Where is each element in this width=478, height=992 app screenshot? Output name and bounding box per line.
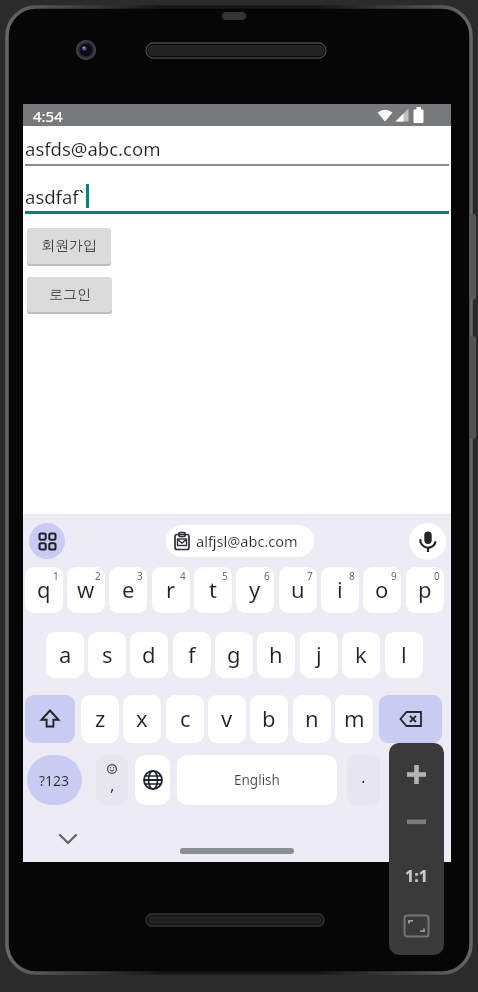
button[interactable]: k — [342, 632, 380, 678]
button[interactable]: m — [335, 695, 373, 743]
button[interactable]: n — [293, 695, 331, 743]
button[interactable] — [379, 695, 442, 743]
button[interactable]: ?123 — [27, 755, 82, 805]
staticText: 6 — [264, 569, 270, 583]
button[interactable] — [135, 755, 170, 805]
button[interactable]: c — [166, 695, 204, 743]
staticText: j — [316, 639, 322, 669]
staticText: asfds@abc.com — [25, 136, 161, 161]
button[interactable]: h — [257, 632, 295, 678]
staticText: n — [305, 703, 319, 733]
button[interactable]: , — [96, 755, 128, 805]
button[interactable]: . — [347, 755, 380, 805]
button[interactable]: j — [300, 632, 338, 678]
button[interactable]: i — [321, 567, 359, 613]
button[interactable] — [407, 765, 426, 784]
button[interactable]: z — [81, 695, 119, 743]
staticText: alfjsl@abc.com — [196, 531, 298, 551]
staticText: b — [262, 703, 276, 733]
button[interactable]: 회원가입 — [27, 228, 111, 264]
staticText: c — [180, 703, 191, 733]
button[interactable]: alfjsl@abc.com — [166, 525, 314, 557]
staticText: s — [102, 639, 113, 669]
button[interactable]: d — [130, 632, 168, 678]
button[interactable] — [29, 523, 65, 559]
staticText: k — [355, 639, 367, 669]
staticText: v — [221, 703, 233, 733]
staticText: d — [142, 639, 156, 669]
staticText: 3 — [137, 569, 143, 583]
staticText: 회원가입 — [41, 237, 97, 255]
staticText: z — [95, 703, 106, 733]
staticText: l — [401, 639, 407, 669]
staticText: r — [166, 574, 176, 604]
staticText: u — [291, 574, 305, 604]
staticText: . — [361, 765, 366, 788]
button[interactable]: 로그인 — [27, 277, 112, 312]
staticText: 4 — [180, 569, 186, 583]
button[interactable]: s — [88, 632, 126, 678]
staticText: w — [77, 574, 95, 604]
button[interactable] — [407, 819, 426, 825]
button[interactable]: o — [363, 567, 401, 613]
staticText: ?123 — [39, 771, 70, 790]
staticText: y — [249, 574, 261, 604]
staticText: g — [227, 639, 241, 669]
button[interactable]: t — [194, 567, 232, 613]
staticText: h — [269, 639, 283, 669]
button[interactable]: p — [406, 567, 444, 613]
staticText: e — [122, 574, 135, 604]
staticText: , — [110, 773, 115, 796]
staticText: t — [209, 574, 217, 604]
button[interactable] — [409, 523, 446, 560]
button[interactable]: 1:1 — [389, 865, 444, 887]
staticText: 8 — [349, 569, 355, 583]
button[interactable]: g — [215, 632, 253, 678]
staticText: 2 — [95, 569, 101, 583]
staticText: 로그인 — [49, 286, 91, 304]
button[interactable]: e — [109, 567, 147, 613]
staticText: asdfaf` — [25, 184, 84, 209]
button[interactable]: y — [236, 567, 274, 613]
button[interactable]: q — [25, 567, 63, 613]
staticText: i — [337, 574, 343, 604]
button[interactable] — [58, 832, 78, 846]
button[interactable]: x — [123, 695, 161, 743]
button[interactable]: w — [67, 567, 105, 613]
staticText: x — [136, 703, 148, 733]
staticText: f — [188, 639, 196, 669]
button[interactable]: r — [152, 567, 190, 613]
button[interactable]: l — [385, 632, 423, 678]
button[interactable]: v — [208, 695, 246, 743]
staticText: 5 — [222, 569, 228, 583]
staticText: 1:1 — [405, 865, 428, 887]
staticText: 1 — [53, 569, 59, 583]
button[interactable]: f — [173, 632, 211, 678]
button[interactable]: b — [250, 695, 288, 743]
button[interactable] — [25, 695, 75, 743]
staticText: 0 — [434, 569, 440, 583]
button[interactable]: English — [177, 755, 337, 805]
button[interactable] — [404, 915, 429, 937]
staticText: 4:54 — [33, 106, 63, 126]
staticText: q — [37, 574, 51, 604]
staticText: 7 — [307, 569, 313, 583]
staticText: English — [234, 771, 280, 789]
staticText: o — [375, 574, 389, 604]
button[interactable]: u — [279, 567, 317, 613]
button[interactable]: a — [46, 632, 84, 678]
staticText: m — [344, 703, 365, 733]
staticText: p — [418, 574, 432, 604]
staticText: 9 — [391, 569, 397, 583]
staticText: a — [59, 639, 72, 669]
